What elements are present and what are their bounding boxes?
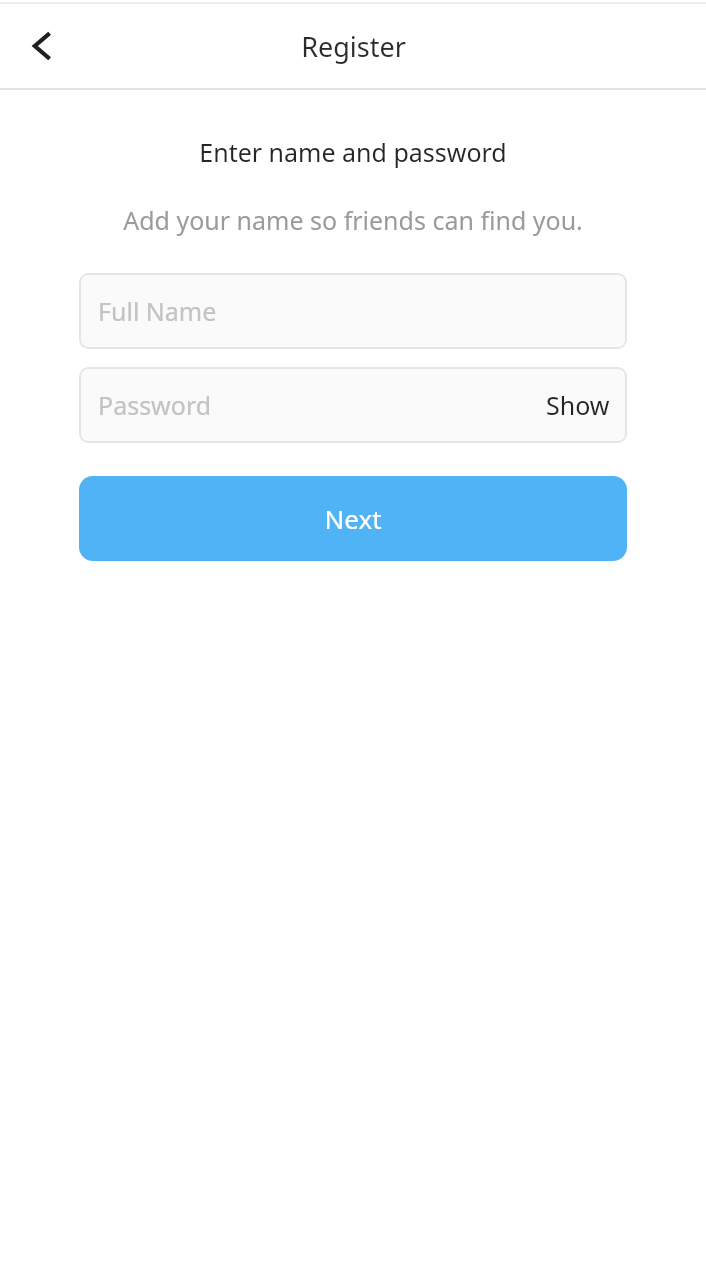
staticText: Enter name and password [0,135,706,169]
button[interactable]: Show [529,376,627,434]
staticText: Next [324,501,382,536]
staticText: Register [301,28,406,65]
button[interactable]: Next [79,476,627,561]
button[interactable]: Back [12,16,72,76]
staticText: Show [546,388,610,422]
staticText: Add your name so friends can find you. [0,203,706,237]
staticText: Full Name [98,294,217,328]
button[interactable]: Password [79,367,627,443]
button[interactable]: Full Name [79,273,627,349]
staticText: Password [98,388,212,422]
